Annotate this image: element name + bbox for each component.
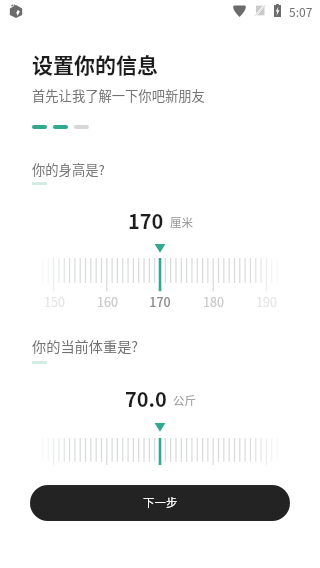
staticText: 设置你的信息: [32, 49, 158, 79]
staticText: 70.0: [125, 384, 167, 413]
staticText: 首先让我了解一下你吧新朋友: [32, 86, 205, 105]
staticText: 你的身高是?: [32, 160, 105, 179]
button[interactable]: 下一步: [30, 485, 290, 521]
staticText: 180: [203, 292, 224, 310]
staticText: 170: [128, 206, 164, 235]
staticText: 190: [256, 292, 277, 310]
staticText: 厘米: [170, 214, 193, 231]
staticText: 170: [149, 292, 171, 310]
staticText: 160: [97, 292, 118, 310]
staticText: 你的当前体重是?: [32, 336, 139, 357]
staticText: 下一步: [143, 494, 178, 511]
staticText: 公斤: [173, 392, 196, 409]
staticText: 150: [44, 292, 65, 310]
staticText: 5:07: [289, 3, 313, 20]
